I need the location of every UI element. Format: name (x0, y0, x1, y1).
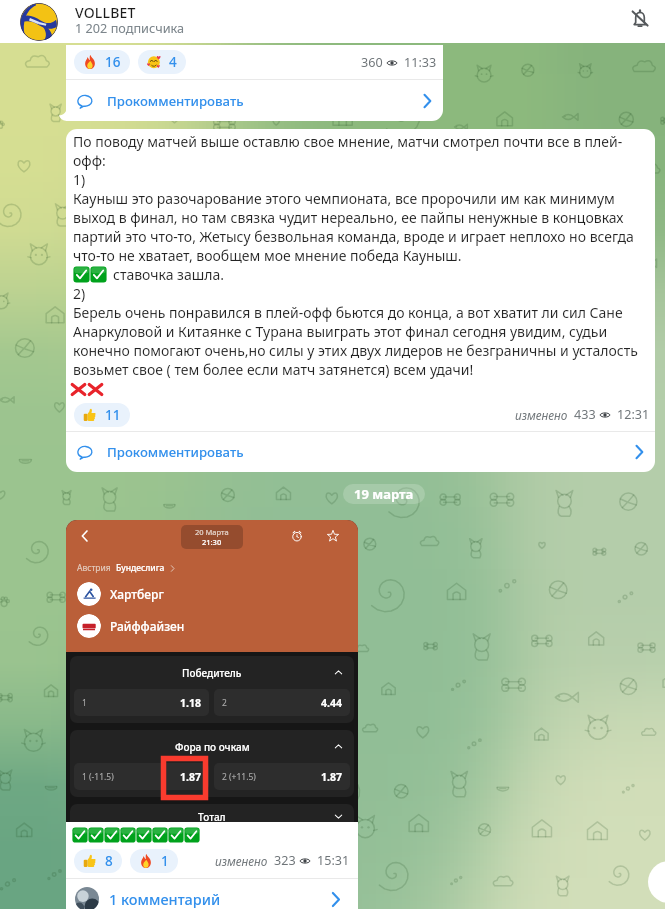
staticText: VOLLBET (75, 3, 136, 22)
button[interactable]: 1 (130, 849, 178, 873)
staticText: Бундеслига (116, 562, 165, 574)
staticText: 1 комментарий (109, 889, 221, 909)
staticText: 1 202 подписчика (75, 19, 185, 36)
staticText: 11:33 (404, 54, 437, 71)
staticText: Прокомментировать (107, 443, 244, 461)
button[interactable]: 19 марта (343, 484, 425, 504)
staticText: Победитель (182, 666, 242, 680)
button[interactable]: Фора по очкам (70, 730, 354, 763)
staticText: 1.18 (180, 696, 201, 710)
button[interactable]: 1 (-11.5) (74, 763, 209, 790)
staticText: 4 (169, 53, 177, 71)
staticText: 1.87 (180, 770, 201, 784)
staticText: 8 (105, 852, 113, 870)
staticText: Прокомментировать (107, 92, 244, 110)
staticText: 1 (82, 697, 87, 709)
staticText: ставочка зашла. (113, 265, 224, 284)
staticText: По поводу матчей выше оставлю свое мнени… (73, 132, 634, 265)
staticText: 20 Марта (195, 527, 229, 537)
staticText: 2 (+11.5) (222, 771, 256, 783)
staticText: 1 (-11.5) (82, 771, 114, 783)
staticText: изменено (515, 407, 568, 423)
staticText: Хартберг (110, 586, 164, 602)
staticText: 1 (161, 852, 169, 870)
button[interactable]: Favorite (322, 525, 344, 547)
staticText: 12:31 (617, 406, 650, 423)
staticText: 433 (574, 406, 596, 423)
staticText: Берель очень понравился в плей-офф бьютс… (73, 303, 638, 379)
button[interactable]: 2 (+11.5) (214, 763, 350, 790)
button[interactable]: 16 (74, 50, 130, 74)
staticText: 2) (73, 284, 86, 303)
staticText: 1.87 (321, 770, 342, 784)
staticText: Райффайзен (110, 618, 185, 634)
button[interactable]: 2 (214, 689, 350, 716)
staticText: Тотал (198, 810, 226, 822)
staticText: 11 (105, 406, 121, 424)
button[interactable]: Прокомментировать (66, 80, 443, 121)
button[interactable]: Австрия (77, 562, 177, 574)
button[interactable]: Тотал (70, 804, 354, 822)
button[interactable]: Прокомментировать (66, 432, 655, 472)
staticText: 15:31 (317, 852, 350, 869)
button[interactable]: 11 (74, 403, 130, 427)
button[interactable]: 1 комментарий (66, 879, 358, 909)
button[interactable]: Scroll to bottom (648, 861, 665, 903)
button[interactable]: Unmute notifications (618, 0, 661, 40)
button[interactable]: Back (74, 525, 96, 547)
staticText: 16 (105, 53, 121, 71)
button[interactable]: 1 (74, 689, 209, 716)
button[interactable]: Победитель (70, 656, 354, 689)
staticText: 21:30 (202, 537, 222, 547)
staticText: 2 (222, 697, 227, 709)
staticText: 19 марта (354, 485, 414, 503)
staticText: изменено (215, 853, 268, 869)
button[interactable]: 4 (138, 50, 186, 74)
button[interactable]: 8 (74, 849, 122, 873)
button[interactable]: Set reminder (286, 525, 308, 547)
staticText: 323 (274, 852, 296, 869)
staticText: Австрия (77, 562, 111, 574)
staticText: 4.44 (321, 696, 342, 710)
staticText: 360 (361, 54, 383, 71)
staticText: Фора по очкам (175, 740, 250, 754)
